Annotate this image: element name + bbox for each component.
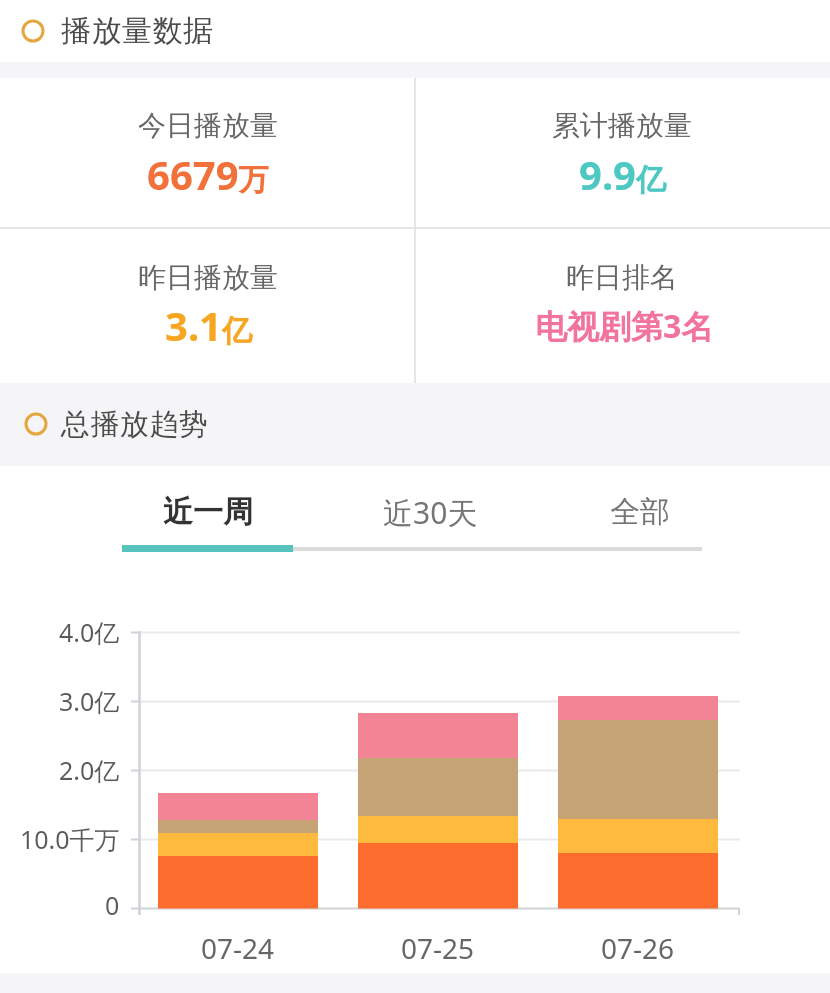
staticText: 今日播放量 — [138, 108, 278, 143]
button[interactable]: 9.9亿 — [472, 142, 772, 206]
staticText: 播放量数据 — [61, 12, 214, 50]
staticText: 累计播放量 — [552, 108, 692, 143]
button[interactable]: 3.1亿 — [58, 293, 358, 357]
staticText: 9.9亿 — [579, 147, 666, 201]
staticText: 07-25 — [401, 929, 475, 967]
staticText: 4.0亿 — [59, 615, 120, 649]
staticText: 0 — [105, 888, 120, 922]
staticText: 总播放趋势 — [61, 406, 209, 443]
staticText: 昨日播放量 — [138, 260, 278, 295]
button[interactable]: 电视剧第3名 — [464, 299, 784, 353]
staticText: 2.0亿 — [59, 753, 120, 787]
button[interactable]: 6679万 — [58, 142, 358, 206]
staticText: 07-24 — [201, 929, 275, 967]
staticText: 6679万 — [147, 147, 269, 201]
staticText: 全部 — [610, 493, 670, 531]
staticText: 3.0亿 — [59, 684, 120, 718]
button[interactable]: 近30天 — [342, 483, 518, 541]
button[interactable]: 全部 — [565, 483, 715, 541]
staticText: 近30天 — [383, 492, 478, 533]
staticText: 07-26 — [601, 929, 675, 967]
staticText: 电视剧第3名 — [535, 304, 714, 348]
staticText: 3.1亿 — [165, 298, 252, 352]
staticText: 10.0千万 — [20, 822, 120, 856]
staticText: 昨日排名 — [566, 260, 678, 295]
staticText: 近一周 — [163, 493, 253, 531]
button[interactable]: 近一周 — [120, 483, 296, 541]
